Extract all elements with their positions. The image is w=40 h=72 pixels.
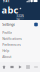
button[interactable]: Shows — [8, 62, 16, 72]
button[interactable]: Help — [0, 48, 40, 54]
button[interactable]: Preferences — [0, 42, 40, 48]
staticText: 9:41 — [2, 0, 9, 3]
button[interactable]: More — [32, 62, 40, 72]
staticText: abc — [1, 3, 18, 16]
staticText: Notifications — [2, 37, 22, 41]
button[interactable]: Home — [0, 62, 8, 72]
button[interactable]: Profile — [0, 30, 40, 36]
staticText: Settings — [2, 22, 15, 27]
button[interactable]: About — [0, 54, 40, 60]
button[interactable]: SIGN IN — [16, 16, 24, 20]
staticText: SIGN IN — [16, 14, 23, 22]
staticText: About — [2, 55, 11, 59]
staticText: Preferences — [2, 43, 21, 47]
staticText: Help — [2, 49, 9, 53]
button[interactable]: Live — [16, 62, 24, 72]
button[interactable]: Account — [34, 23, 38, 26]
button[interactable]: Browse — [24, 62, 32, 72]
button[interactable]: Notifications — [0, 36, 40, 42]
staticText: Profile — [2, 31, 12, 35]
